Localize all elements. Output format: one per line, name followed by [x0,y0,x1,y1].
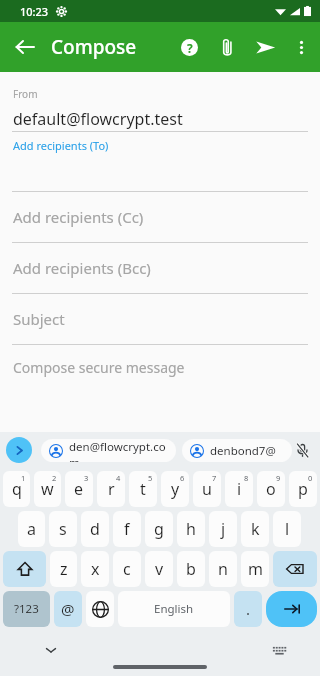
button[interactable]: Subject [0,294,320,344]
staticText: b [186,558,196,580]
button[interactable]: Shift [3,551,46,587]
staticText: 0 [308,473,313,483]
staticText: Subject [13,309,65,329]
staticText: q [12,478,22,500]
staticText: l [285,518,290,540]
staticText: . [246,599,251,619]
button[interactable]: Add recipients (To) [0,137,320,153]
button[interactable]: default@flowcrypt.test [0,107,320,131]
button[interactable]: r [97,471,125,507]
staticText: z [60,558,68,580]
staticText: r [108,478,115,500]
staticText: 7 [212,473,217,483]
button[interactable]: m [241,551,269,587]
staticText: h [186,518,196,540]
staticText: f [124,518,130,540]
staticText: m [248,558,263,580]
button[interactable]: denbond7@ [182,439,292,462]
button[interactable]: l [273,511,301,547]
staticText: t [140,478,146,500]
button[interactable]: Voice input off [289,437,315,463]
button[interactable]: t [129,471,157,507]
staticText: u [202,478,212,500]
staticText: g [154,518,164,540]
staticText: 9 [276,473,281,483]
button[interactable]: s [49,511,77,547]
staticText: Add recipients (To) [13,138,109,153]
button[interactable]: More options [284,30,318,64]
button[interactable]: Hide keyboard [38,637,64,663]
staticText: 2 [52,473,57,483]
button[interactable]: i [225,471,253,507]
button[interactable]: Send [246,28,284,66]
staticText: o [266,478,276,500]
button[interactable]: Add recipients (Bcc) [0,243,320,293]
button[interactable]: Keyboard switcher [266,637,292,663]
button[interactable]: x [81,551,109,587]
staticText: n [218,558,228,580]
button[interactable]: Add recipients (Cc) [0,192,320,242]
staticText: @ [61,599,75,619]
button[interactable]: h [177,511,205,547]
button[interactable]: v [145,551,173,587]
button[interactable]: g [145,511,173,547]
staticText: Compose [51,34,137,60]
button[interactable]: o [257,471,285,507]
staticText: 1 [21,473,26,483]
staticText: default@flowcrypt.test [13,108,183,130]
staticText: ? [187,40,193,56]
staticText: Compose secure message [13,358,185,377]
button[interactable]: Change language [86,591,114,627]
staticText: 10:23 [20,4,49,19]
button[interactable]: Compose secure message [0,345,320,389]
staticText: k [251,518,260,540]
button[interactable]: Attach file [208,28,246,66]
button[interactable]: w [34,471,61,507]
button[interactable]: d [81,511,109,547]
button[interactable]: a [18,511,45,547]
button[interactable]: Expand suggestions [6,437,32,463]
button[interactable]: f [113,511,141,547]
button[interactable]: y [161,471,189,507]
staticText: c [123,558,131,580]
button[interactable]: n [209,551,237,587]
staticText: j [221,518,226,540]
button[interactable]: j [209,511,237,547]
button[interactable]: q [3,471,30,507]
button[interactable]: Backspace [273,551,317,587]
staticText: Add recipients (Bcc) [13,258,151,278]
button[interactable]: ?123 [3,591,50,627]
staticText: s [59,518,67,540]
staticText: y [171,478,180,500]
button[interactable]: z [50,551,77,587]
staticText: English [154,601,194,617]
staticText: ?123 [14,601,39,617]
staticText: 5 [148,473,153,483]
button[interactable]: Back [6,28,44,66]
button[interactable]: Next field [266,591,317,627]
staticText: x [91,558,100,580]
button[interactable]: u [193,471,221,507]
staticText: 8 [244,473,249,483]
staticText: a [27,518,36,540]
button[interactable]: English [118,591,230,627]
staticText: From [13,87,38,101]
button[interactable]: p [289,471,317,507]
button[interactable]: e [65,471,93,507]
button[interactable]: den@flowcrypt.com [41,439,176,462]
staticText: i [237,478,242,500]
button[interactable]: k [241,511,269,547]
staticText: w [41,478,54,500]
staticText: p [298,478,308,500]
button[interactable]: @ [54,591,82,627]
staticText: e [74,478,84,500]
button[interactable]: . [234,591,262,627]
staticText: 4 [116,473,121,483]
staticText: Add recipients (Cc) [13,207,144,227]
staticText: den@flowcrypt.com [69,439,176,462]
staticText: 6 [180,473,185,483]
button[interactable]: Help [170,28,208,66]
button[interactable]: c [113,551,141,587]
button[interactable]: b [177,551,205,587]
staticText: 3 [84,473,89,483]
